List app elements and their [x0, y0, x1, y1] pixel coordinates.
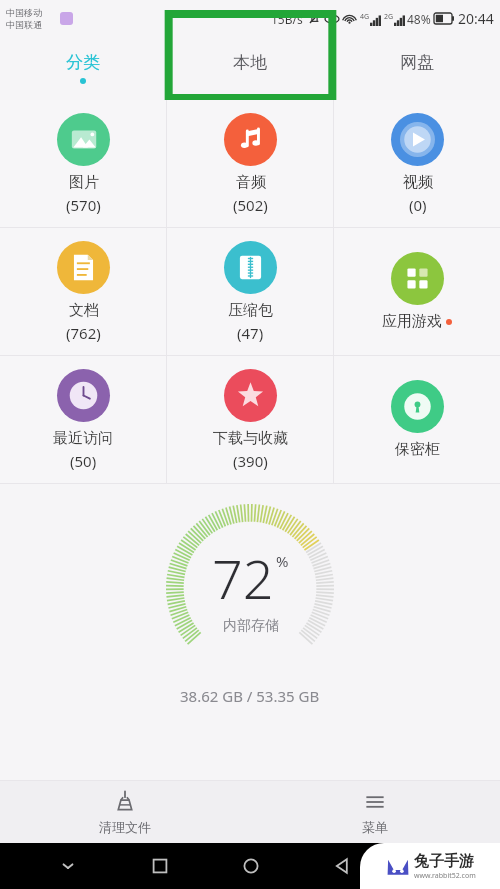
staticText: (0)	[409, 195, 427, 215]
staticText: (50)	[70, 451, 97, 471]
button[interactable]: 分类	[0, 36, 166, 100]
button[interactable]: 下载与收藏	[167, 356, 333, 483]
button[interactable]: 保密柜	[334, 356, 500, 483]
staticText: (47)	[237, 323, 264, 343]
staticText: 应用游戏	[382, 312, 442, 331]
staticText: 分类	[66, 52, 100, 73]
staticText: 中国移动	[6, 7, 42, 18]
staticText: 最近访问	[53, 429, 113, 448]
staticText: %	[276, 551, 289, 571]
button[interactable]: 视频	[334, 100, 500, 227]
button[interactable]: Back	[296, 843, 387, 889]
staticText: www.rabbit52.com	[414, 871, 476, 881]
button[interactable]: 本地	[166, 36, 333, 100]
staticText: (570)	[66, 195, 101, 215]
staticText: (762)	[66, 323, 101, 343]
staticText: 压缩包	[228, 301, 273, 320]
staticText: 文档	[69, 301, 99, 320]
staticText: 2G	[384, 12, 394, 22]
button[interactable]: Recent apps	[114, 843, 205, 889]
button[interactable]: 最近访问	[0, 356, 166, 483]
staticText: 内部存储	[223, 617, 279, 635]
button[interactable]: 网盘	[333, 36, 500, 100]
staticText: 菜单	[362, 819, 388, 835]
button[interactable]: 压缩包	[167, 228, 333, 355]
button[interactable]: Hide navigation bar	[22, 843, 114, 889]
button[interactable]: 图片	[0, 100, 166, 227]
staticText: 网盘	[400, 52, 434, 73]
button[interactable]: 文档	[0, 228, 166, 355]
staticText: 保密柜	[395, 440, 440, 459]
staticText: 48%	[407, 11, 431, 27]
button[interactable]: 应用游戏	[334, 228, 500, 355]
staticText: 中国联通	[6, 19, 42, 30]
staticText: 视频	[403, 173, 433, 192]
staticText: 20:44	[458, 9, 494, 28]
button[interactable]: 菜单	[250, 781, 500, 843]
staticText: 音频	[236, 173, 266, 192]
button[interactable]: 清理文件	[0, 781, 250, 843]
button[interactable]: Home	[205, 843, 296, 889]
staticText: 图片	[69, 173, 99, 192]
staticText: 清理文件	[99, 819, 151, 835]
staticText: 15B/s	[271, 11, 303, 27]
button[interactable]: 音频	[167, 100, 333, 227]
staticText: (390)	[233, 451, 268, 471]
staticText: 4G	[360, 12, 370, 22]
staticText: 38.62 GB / 53.35 GB	[180, 686, 320, 706]
staticText: 下载与收藏	[213, 429, 288, 448]
staticText: 72	[212, 541, 274, 615]
staticText: 本地	[233, 52, 267, 73]
staticText: (502)	[233, 195, 268, 215]
staticText: 兔子手游	[414, 852, 474, 871]
